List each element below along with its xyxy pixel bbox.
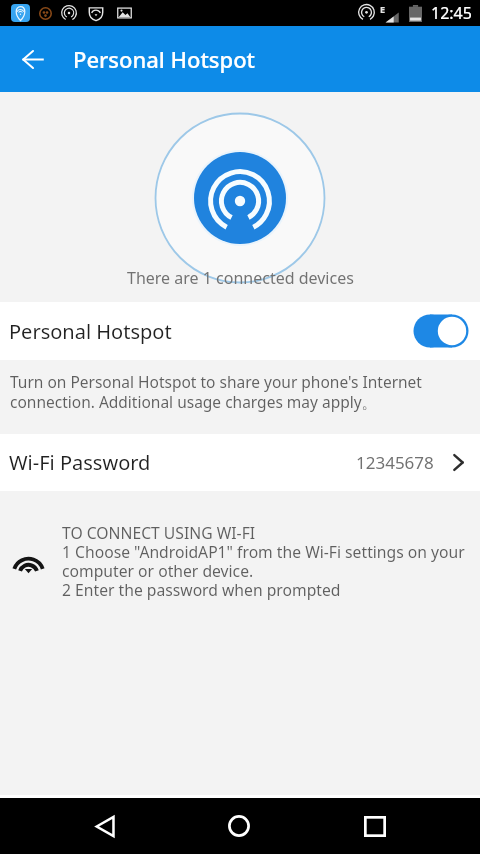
- staticText: Personal Hotspot: [9, 318, 172, 345]
- staticText: There are 1 connected devices: [127, 267, 354, 289]
- staticText: 12:45: [431, 2, 472, 24]
- button[interactable]: Home: [172, 798, 306, 854]
- button[interactable]: Wi-Fi Password: [0, 434, 480, 491]
- button[interactable]: Personal Hotspot: [0, 302, 480, 360]
- staticText: Turn on Personal Hotspot to share your p…: [10, 371, 472, 412]
- staticText: TO CONNECT USING WI-FI 1 Choose "Android…: [62, 522, 474, 601]
- button[interactable]: Back: [0, 798, 172, 854]
- staticText: E: [380, 3, 386, 15]
- other: Wi-Fi: [11, 550, 46, 575]
- button[interactable]: Back: [0, 26, 66, 92]
- button[interactable]: Recent apps: [306, 798, 480, 854]
- staticText: Wi-Fi Password: [9, 449, 151, 476]
- staticText: 12345678: [356, 451, 434, 474]
- staticText: Personal Hotspot: [73, 44, 256, 74]
